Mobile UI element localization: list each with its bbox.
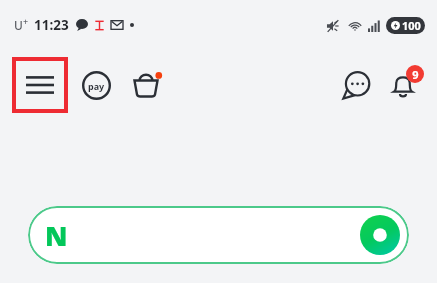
button[interactable]: Smart lens	[359, 214, 401, 256]
staticText: N	[45, 217, 68, 254]
staticText: U	[14, 17, 23, 33]
staticText: 9	[412, 67, 419, 82]
staticText: 11:23	[34, 16, 69, 34]
button[interactable]: Pay	[74, 63, 118, 107]
button[interactable]: Menu	[12, 57, 68, 113]
button[interactable]: N	[28, 206, 409, 264]
staticText: 100	[402, 18, 421, 33]
button[interactable]: Notifications, 9 new	[381, 63, 425, 107]
button[interactable]: Chat	[335, 63, 379, 107]
staticText: +	[23, 15, 29, 27]
staticText: pay	[88, 80, 105, 92]
button[interactable]: Shopping bag	[124, 63, 168, 107]
